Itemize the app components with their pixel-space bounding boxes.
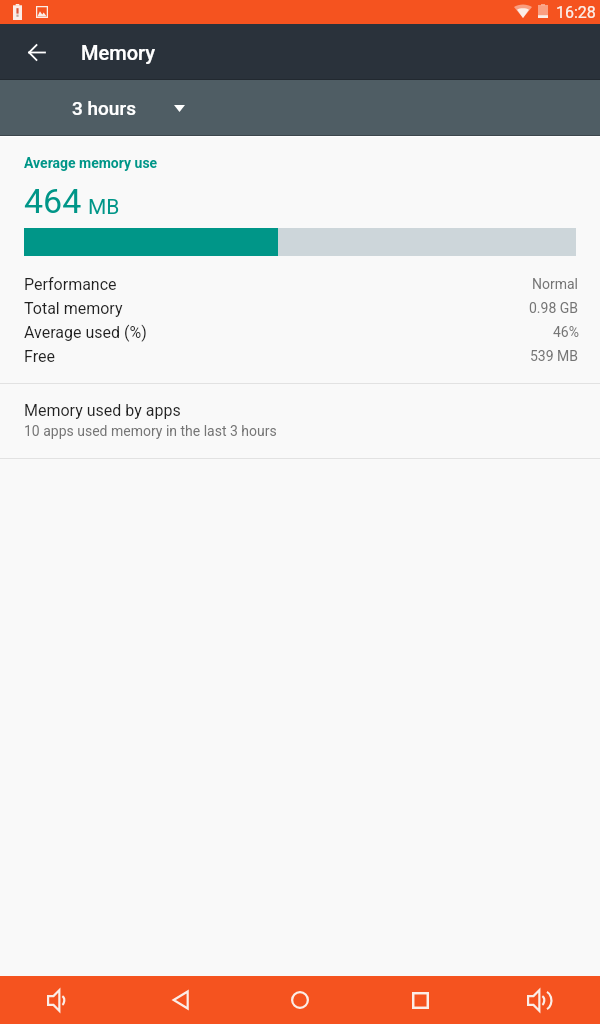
button[interactable]: Volume down [0, 976, 120, 1024]
staticText: Memory [81, 41, 156, 64]
button[interactable]: Memory used by apps [0, 384, 600, 458]
staticText: 3 hours [72, 97, 136, 119]
staticText: Total memory [24, 299, 123, 318]
button[interactable]: Volume up [480, 976, 600, 1024]
staticText: Average used (%) [24, 323, 147, 342]
button[interactable]: Back [120, 976, 240, 1024]
button[interactable]: 3 hours [0, 89, 209, 127]
staticText: Free [24, 347, 55, 366]
button[interactable]: Home [240, 976, 360, 1024]
staticText: 16:28 [556, 3, 596, 22]
staticText: 0.98 GB [529, 300, 579, 316]
staticText: Average memory use [24, 155, 158, 171]
button[interactable]: Recent apps [360, 976, 480, 1024]
staticText: 10 apps used memory in the last 3 hours [24, 423, 277, 439]
staticText: Performance [24, 275, 117, 294]
staticText: 46% [553, 324, 579, 340]
staticText: Memory used by apps [24, 401, 181, 420]
staticText: MB [88, 195, 120, 220]
staticText: 464 [24, 181, 82, 221]
button[interactable]: Navigate up [0, 24, 72, 80]
staticText: 539 MB [530, 348, 579, 364]
staticText: Normal [532, 276, 579, 292]
